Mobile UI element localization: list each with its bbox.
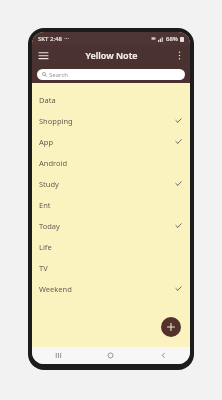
staticText: Yellow Note xyxy=(85,49,138,61)
staticText: Ent xyxy=(39,200,51,210)
staticText: Search xyxy=(49,71,68,79)
staticText: SKT 2:48 xyxy=(38,35,62,43)
button[interactable]: Data xyxy=(32,89,190,110)
staticText: Life xyxy=(39,242,52,252)
button[interactable]: App xyxy=(32,131,190,152)
staticText: Today xyxy=(39,221,60,231)
button[interactable]: Today xyxy=(32,215,190,236)
button[interactable]: Recent apps xyxy=(32,347,84,364)
staticText: Data xyxy=(39,95,56,105)
button[interactable]: Shopping xyxy=(32,110,190,131)
button[interactable]: Life xyxy=(32,236,190,257)
button[interactable]: Ent xyxy=(32,194,190,215)
staticText: TV xyxy=(39,263,48,273)
staticText: Study xyxy=(39,179,59,189)
button[interactable]: Open navigation drawer xyxy=(35,47,51,63)
staticText: Shopping xyxy=(39,116,73,126)
button[interactable]: Back xyxy=(137,347,190,364)
button[interactable]: Add note xyxy=(161,317,181,337)
button[interactable]: TV xyxy=(32,257,190,278)
staticText: App xyxy=(39,137,54,147)
button[interactable]: Weekend xyxy=(32,278,190,299)
button[interactable]: Android xyxy=(32,152,190,173)
button[interactable]: Home xyxy=(84,347,137,364)
staticText: Weekend xyxy=(39,284,72,294)
staticText: 68% xyxy=(166,35,178,43)
button[interactable]: Study xyxy=(32,173,190,194)
button[interactable]: More options xyxy=(171,47,187,63)
button[interactable]: Search xyxy=(37,69,185,80)
staticText: Android xyxy=(39,158,68,168)
